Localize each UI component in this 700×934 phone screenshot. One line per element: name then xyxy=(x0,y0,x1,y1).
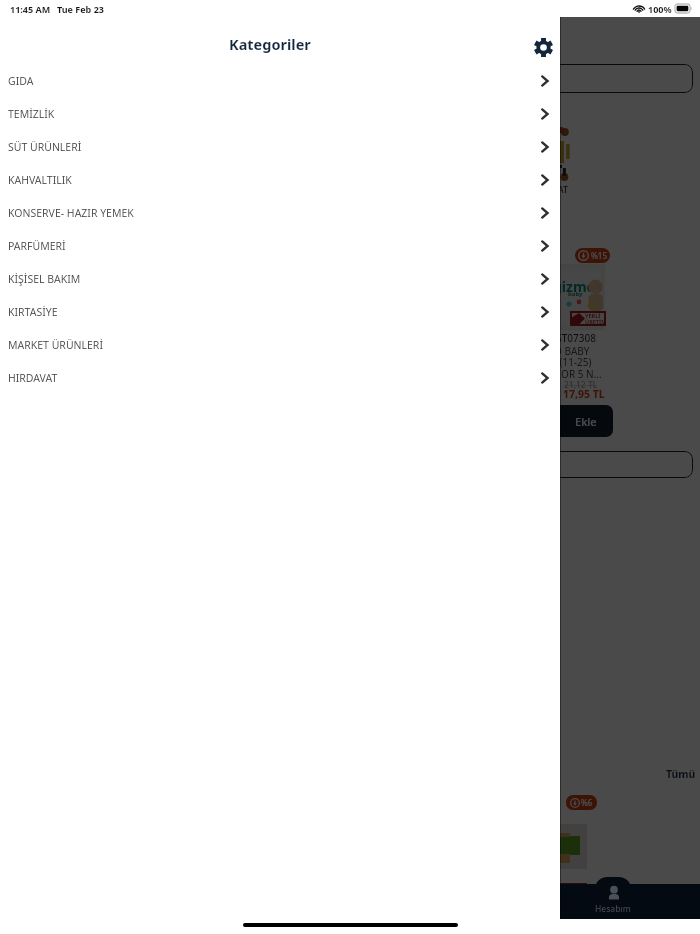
button[interactable]: KAHVALTILIK xyxy=(0,163,560,196)
staticText: Kategoriler xyxy=(229,34,311,54)
staticText: 100% xyxy=(648,3,672,15)
button[interactable]: KIRTASİYE xyxy=(0,295,560,328)
button[interactable]: PARFÜMERİ xyxy=(0,229,560,262)
button[interactable]: Hesabım xyxy=(560,884,700,919)
staticText: HIRDAVAT xyxy=(8,371,58,385)
staticText: HIRDAVAT xyxy=(525,183,569,195)
staticText: 11:45 AM xyxy=(10,3,51,15)
staticText: Tue Feb 23 xyxy=(57,3,104,15)
button[interactable]: Ürün xyxy=(520,790,601,922)
button[interactable]: GIDA xyxy=(0,64,560,97)
button[interactable]: MARKET ÜRÜNLERİ xyxy=(0,328,560,361)
button[interactable]: Settings xyxy=(527,31,559,63)
button[interactable]: SÜT ÜRÜNLERİ xyxy=(0,130,560,163)
button[interactable]: Search xyxy=(508,64,693,93)
staticText: gizmo xyxy=(553,277,596,296)
staticText: Tümü xyxy=(666,767,696,781)
staticText: GIDA xyxy=(8,74,34,88)
staticText: Hesabım xyxy=(595,903,631,915)
staticText: MARKET ÜRÜNLERİ xyxy=(8,338,103,352)
staticText: baby xyxy=(568,290,583,298)
button[interactable]: TEMİZLİK xyxy=(0,97,560,130)
staticText: 17,95 TL xyxy=(563,387,605,401)
staticText: KIRTASİYE xyxy=(8,305,58,319)
staticText: PARFÜMERİ xyxy=(8,239,66,253)
button[interactable]: GİZMO BABY ürünü xyxy=(526,245,614,417)
button[interactable]: Search xyxy=(508,451,693,478)
button[interactable]: HIRDAVAT kategorisi xyxy=(514,117,576,207)
button[interactable]: KONSERVE- HAZIR YEMEK xyxy=(0,196,560,229)
staticText: YERLİ ÜRETİM xyxy=(585,312,607,325)
staticText: 21,12 TL xyxy=(564,379,598,391)
staticText: Ekle xyxy=(575,414,597,429)
staticText: GİZMO BABY BEBEK (11-25) BEZİ JUNİOR 5 N… xyxy=(526,344,603,381)
staticText: KİŞİSEL BAKIM xyxy=(8,272,81,286)
staticText: KAHVALTILIK xyxy=(8,173,72,187)
staticText: %6 xyxy=(581,797,593,808)
button[interactable]: Tümü xyxy=(666,767,696,781)
button[interactable]: KİŞİSEL BAKIM xyxy=(0,262,560,295)
staticText: KONSERVE- HAZIR YEMEK xyxy=(8,206,134,220)
staticText: GİZMO ST07308 xyxy=(526,331,596,345)
button[interactable]: Ekle xyxy=(524,405,613,437)
staticText: SÜT ÜRÜNLERİ xyxy=(8,140,82,154)
staticText: TEMİZLİK xyxy=(8,107,55,121)
button[interactable]: HIRDAVAT xyxy=(0,361,560,394)
staticText: %15 xyxy=(591,250,607,261)
